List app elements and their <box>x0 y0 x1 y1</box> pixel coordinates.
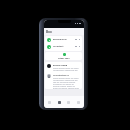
button[interactable]: Bundle Desig <box>45 62 82 72</box>
button[interactable]: Tab 3 <box>66 101 71 106</box>
button[interactable]: Tab 2 <box>57 101 62 106</box>
staticText: lorem ipsum dolor sit amet consectetur a… <box>53 77 80 89</box>
button[interactable]: Tab 1 <box>47 101 52 106</box>
button[interactable]: Bundle Desi <box>45 36 82 43</box>
button[interactable]: Tab 4 <box>76 101 81 106</box>
button[interactable]: Architecture G <box>45 72 82 89</box>
button[interactable]: Architect <box>45 43 82 50</box>
staticText: Bundle Desig <box>53 64 68 67</box>
staticText: Architect <box>53 45 64 48</box>
button[interactable]: Other files <box>45 52 82 60</box>
staticText: lorem ipsum dolor sit amet consectetur a… <box>53 67 80 72</box>
staticText: Box <box>46 30 52 34</box>
staticText: Other files <box>58 57 70 60</box>
staticText: Bundle Desi <box>53 38 67 41</box>
staticText: Architecture G <box>53 74 69 77</box>
